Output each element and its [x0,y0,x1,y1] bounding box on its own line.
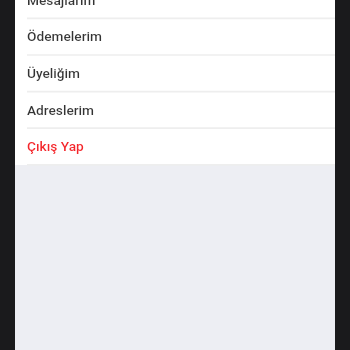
staticText: Çıkış Yap [27,138,84,154]
button[interactable]: Mesajlarım [15,0,335,19]
staticText: Ödemelerim [27,28,102,44]
button[interactable]: Ödemelerim [15,18,335,55]
button[interactable]: Üyeliğim [15,55,335,92]
button[interactable]: Çıkış Yap [15,128,335,165]
staticText: Adreslerim [27,102,95,118]
staticText: Üyeliğim [27,65,81,81]
button[interactable]: Adreslerim [15,92,335,129]
staticText: Mesajlarım [27,0,96,8]
